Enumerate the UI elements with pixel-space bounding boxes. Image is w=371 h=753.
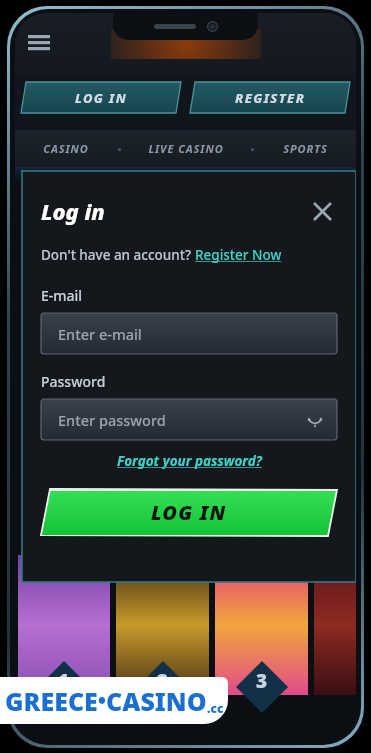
staticText: E-mail [41,286,83,305]
staticText: LIVE CASINO [148,141,224,156]
button[interactable]: Close [307,196,337,226]
staticText: Log in [41,196,105,226]
button[interactable]: LOG IN [21,82,181,113]
button[interactable]: 1 [18,555,110,695]
button[interactable]: GREECE [0,677,228,724]
staticText: SPORTS [283,141,328,156]
staticText: REGISTER [235,89,306,107]
button[interactable]: REGISTER [190,82,350,113]
staticText: Don't have an account? [41,246,195,264]
button[interactable]: CASINO [15,130,116,167]
staticText: CASINO [106,684,207,718]
button[interactable]: Enter e-mail [41,313,337,354]
staticText: • [98,687,106,714]
staticText: Enter password [58,410,166,430]
button[interactable]: LIVE CASINO [122,130,249,167]
button[interactable]: Forgot your password? [117,452,262,470]
button[interactable]: SPORTS [255,130,356,167]
staticText: 2 [157,668,169,694]
button[interactable]: Show password [303,408,327,432]
button[interactable]: 3 [215,555,308,695]
staticText: 1 [58,668,70,694]
staticText: Enter e-mail [58,324,142,344]
staticText: Register Now [195,246,282,264]
staticText: Forgot your password? [117,452,262,470]
button[interactable]: Register Now [195,246,282,264]
button[interactable]: LOG IN [41,489,337,536]
button[interactable] [314,555,356,695]
staticText: GREECE [5,684,98,718]
staticText: LOG IN [75,89,128,107]
staticText: .cc [207,700,224,716]
staticText: Password [41,372,106,391]
button[interactable]: Enter password [41,399,337,440]
button[interactable]: Menu [25,27,55,57]
staticText: CASINO [43,141,89,156]
staticText: 3 [256,668,268,694]
button[interactable]: 2 [116,555,209,695]
staticText: LOG IN [151,499,227,526]
